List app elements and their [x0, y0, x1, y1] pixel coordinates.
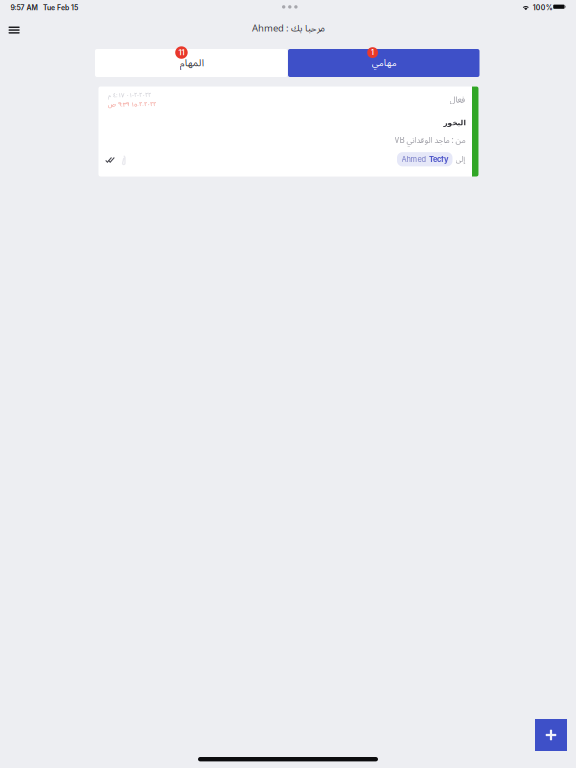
staticText: من : ماجد الوقداني VB: [394, 132, 465, 149]
staticText: المهام: [179, 53, 203, 73]
button[interactable]: المهام: [95, 49, 287, 77]
staticText: Tue Feb 15: [43, 4, 78, 12]
button[interactable]: Add task: [535, 719, 567, 751]
staticText: 9:57 AM: [10, 4, 37, 12]
staticText: إلى: [455, 151, 465, 167]
button[interactable]: مهامي: [288, 49, 479, 77]
staticText: فعال: [449, 91, 465, 109]
staticText: ٢٠٢٢-٢-١٥ ٩:٣٩ ص: [107, 98, 155, 111]
staticText: البخور: [443, 118, 465, 127]
staticText: 100%: [533, 4, 553, 12]
staticText: Ahmed: [401, 155, 426, 164]
button[interactable]: ٢٠٢٢-٢-٠١ ٤:١٧ م: [98, 86, 478, 176]
staticText: Tecfy: [429, 155, 448, 164]
staticText: ٢٠٢٢-٢-٠١ ٤:١٧ م: [107, 89, 150, 102]
staticText: 1: [371, 48, 374, 57]
staticText: مهامي: [371, 53, 396, 73]
staticText: 11: [178, 48, 184, 57]
button[interactable]: Menu: [0, 19, 28, 45]
staticText: مرحبا بك : Ahmed: [251, 18, 324, 38]
